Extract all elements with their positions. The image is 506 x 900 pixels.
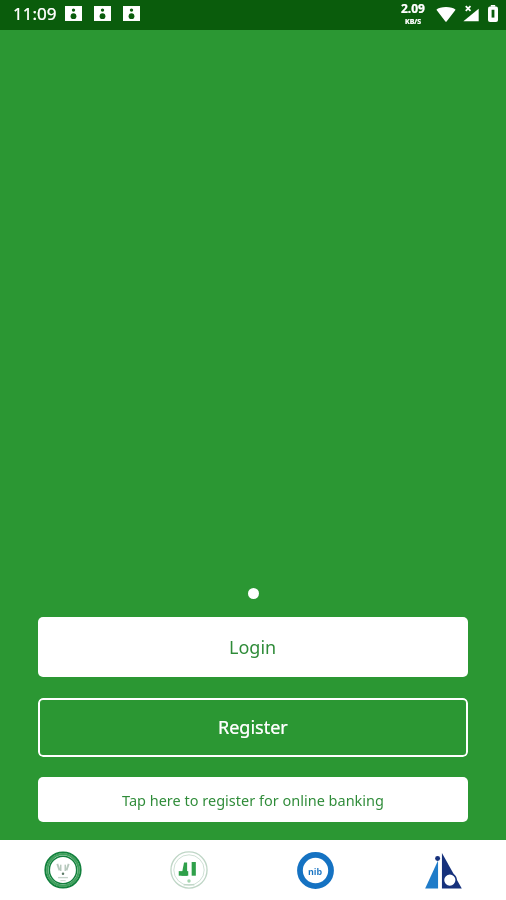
staticText: Tap here to register for online banking [122, 790, 384, 810]
button[interactable]: Tap here to register for online banking [38, 777, 468, 822]
button[interactable]: Register [38, 698, 468, 757]
button[interactable]: Bank seal [0, 840, 126, 900]
staticText: Login [229, 635, 277, 660]
staticText: nib [308, 865, 323, 877]
button[interactable]: NIBSS [252, 840, 379, 900]
button[interactable]: Internet banking [379, 840, 506, 900]
button[interactable]: Institution crest [126, 840, 252, 900]
staticText: 2.09 [401, 0, 425, 16]
button[interactable]: Login [38, 617, 468, 677]
staticText: 11:09 [13, 2, 57, 25]
staticText: KB/S [405, 17, 422, 27]
staticText: Register [218, 715, 288, 740]
